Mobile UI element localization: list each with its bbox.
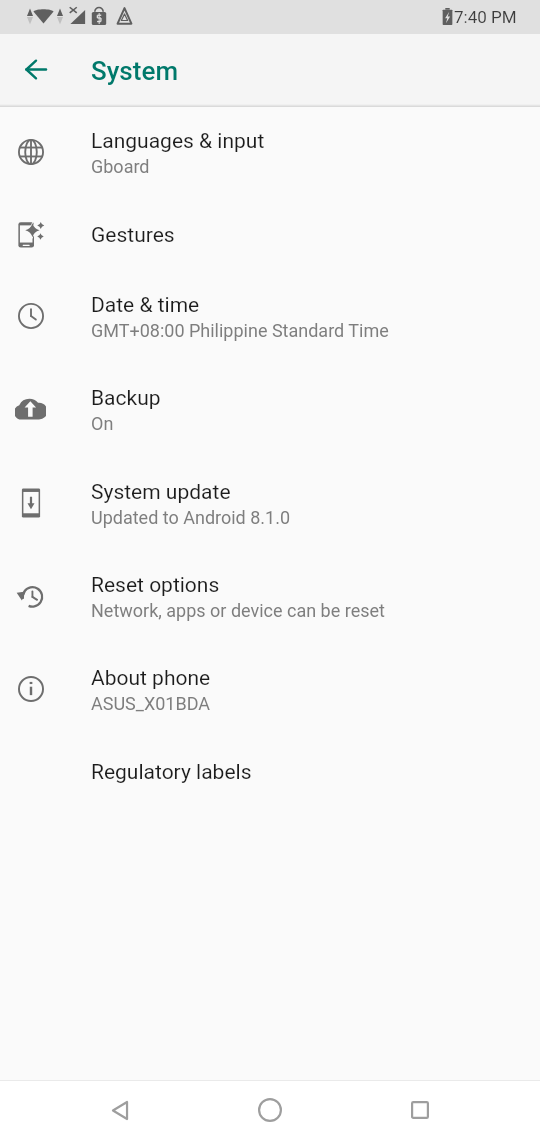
staticText: Backup	[91, 386, 161, 411]
button[interactable]: About phone	[0, 646, 540, 740]
button[interactable]: Home	[240, 1080, 300, 1140]
staticText: Updated to Android 8.1.0	[91, 507, 291, 528]
staticText: Network, apps or device can be reset	[91, 600, 385, 621]
button[interactable]: Gestures	[0, 203, 540, 273]
staticText: Date & time	[91, 293, 200, 318]
staticText: GMT+08:00 Philippine Standard Time	[91, 320, 389, 341]
staticText: Gestures	[91, 223, 175, 248]
staticText: Reset options	[91, 573, 220, 598]
staticText: 7:40 PM	[454, 7, 517, 27]
button[interactable]: Navigate up	[11, 45, 60, 94]
button[interactable]: System update	[0, 460, 540, 554]
staticText: On	[91, 413, 114, 434]
button[interactable]: Recent apps	[390, 1080, 450, 1140]
staticText: ASUS_X01BDA	[91, 693, 211, 714]
button[interactable]: Backup	[0, 366, 540, 460]
staticText: System	[91, 56, 179, 86]
button[interactable]: Languages & input	[0, 109, 540, 203]
button[interactable]: Date & time	[0, 273, 540, 367]
staticText: Languages & input	[91, 129, 265, 154]
staticText: Regulatory labels	[91, 760, 252, 785]
staticText: System update	[91, 480, 231, 505]
staticText: About phone	[91, 666, 211, 691]
button[interactable]: Reset options	[0, 553, 540, 646]
staticText: Gboard	[91, 156, 150, 177]
button[interactable]: Regulatory labels	[0, 740, 540, 1080]
button[interactable]: Back	[90, 1080, 150, 1140]
